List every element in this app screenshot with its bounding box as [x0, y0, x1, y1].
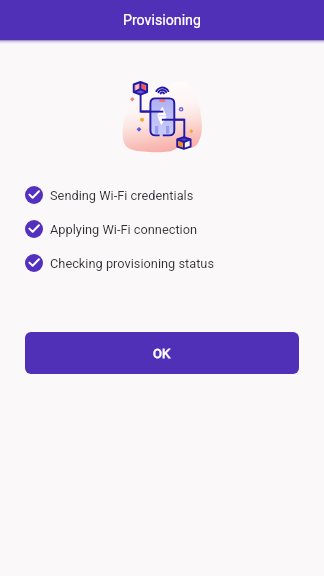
- staticText: Sending Wi-Fi credentials: [50, 188, 194, 203]
- staticText: OK: [153, 346, 171, 361]
- button[interactable]: OK: [25, 332, 299, 374]
- staticText: Applying Wi-Fi connection: [50, 222, 198, 237]
- staticText: Checking provisioning status: [50, 256, 215, 271]
- staticText: Provisioning: [123, 12, 201, 29]
